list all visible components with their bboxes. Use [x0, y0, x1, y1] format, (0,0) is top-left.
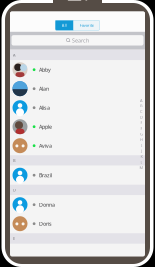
staticText: F	[140, 126, 142, 131]
staticText: Abby	[39, 66, 51, 73]
staticText: Favorite	[80, 23, 94, 28]
button[interactable]: Alisa	[10, 98, 145, 117]
button[interactable]: Brazil	[10, 166, 145, 185]
button[interactable]: Search	[11, 35, 143, 46]
staticText: L	[140, 159, 142, 165]
staticText: Doris	[39, 220, 52, 227]
staticText: A	[140, 98, 143, 103]
staticText: D	[140, 114, 143, 120]
staticText: Apple	[39, 123, 52, 130]
staticText: Brazil	[39, 172, 52, 179]
button[interactable]: Favorite	[73, 20, 100, 30]
staticText: Search	[72, 37, 89, 44]
staticText: Alisa	[39, 104, 50, 111]
staticText: K	[140, 154, 142, 159]
staticText: H	[140, 137, 143, 142]
button[interactable]: Alan	[10, 79, 145, 98]
staticText: J	[141, 148, 142, 153]
staticText: E	[140, 120, 142, 125]
staticText: C	[140, 109, 143, 114]
staticText: E	[13, 236, 15, 241]
staticText: M	[139, 165, 143, 170]
staticText: B	[13, 158, 16, 163]
staticText: B	[140, 103, 143, 109]
button[interactable]: Aviva	[10, 136, 145, 155]
button[interactable]: Doris	[10, 214, 145, 233]
staticText: I	[141, 143, 142, 148]
staticText: All	[62, 23, 67, 28]
button[interactable]: Donna	[10, 195, 145, 214]
staticText: Donna	[39, 201, 55, 208]
staticText: G	[140, 131, 143, 137]
staticText: D	[13, 187, 16, 193]
button[interactable]: Apple	[10, 117, 145, 136]
staticText: A	[13, 52, 16, 58]
button[interactable]: Abby	[10, 60, 145, 79]
staticText: Alan	[39, 85, 49, 92]
button[interactable]: All	[55, 20, 73, 30]
staticText: Aviva	[39, 142, 52, 149]
